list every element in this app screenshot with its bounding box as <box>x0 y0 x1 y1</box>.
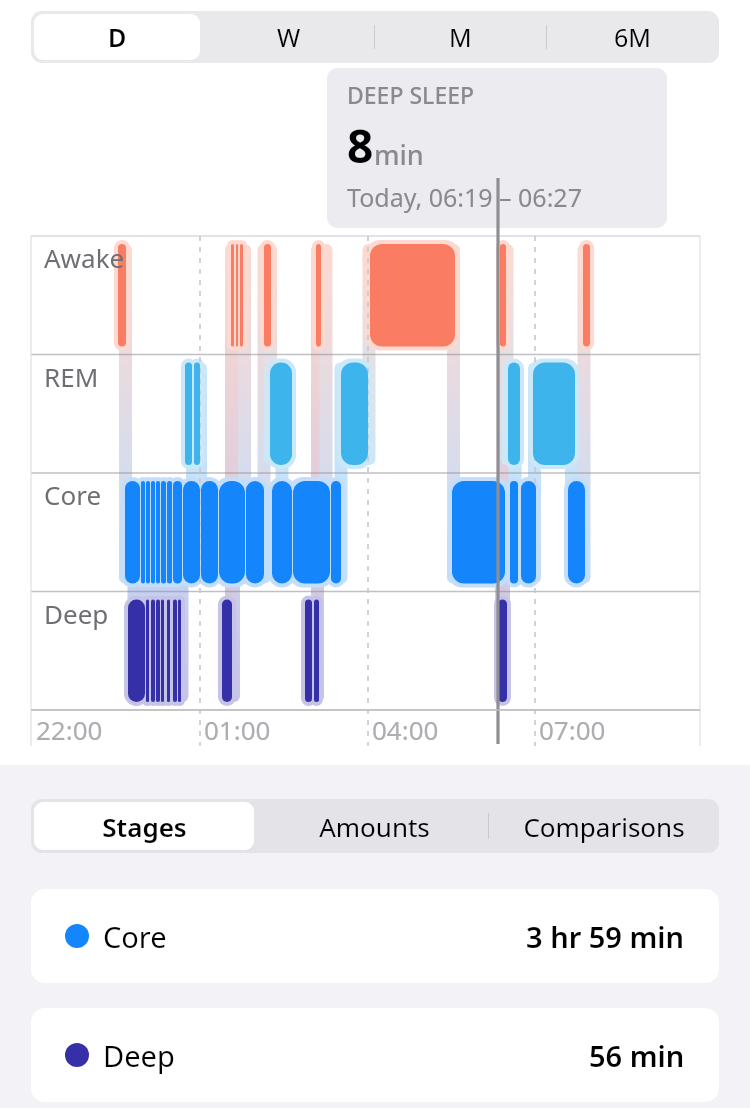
staticText: Awake <box>44 240 125 275</box>
staticText: DEEP SLEEP <box>347 79 475 110</box>
button[interactable]: Core <box>31 889 719 983</box>
button[interactable]: Deep <box>31 1008 719 1102</box>
button[interactable]: D <box>34 14 200 60</box>
button[interactable]: Comparisons <box>490 802 718 850</box>
staticText: Core <box>103 917 167 956</box>
staticText: 07:00 <box>539 712 606 747</box>
staticText: Stages <box>102 809 187 844</box>
staticText: Deep <box>44 596 109 631</box>
button[interactable]: W <box>206 14 372 60</box>
button[interactable]: Stages <box>34 802 254 850</box>
staticText: 04:00 <box>372 712 439 747</box>
staticText: min <box>374 136 424 173</box>
button[interactable]: M <box>377 14 543 60</box>
button[interactable]: DEEP SLEEP <box>327 68 667 228</box>
staticText: W <box>277 20 301 54</box>
staticText: 56 min <box>589 1036 685 1075</box>
staticText: 01:00 <box>204 712 271 747</box>
staticText: 6M <box>614 20 651 54</box>
staticText: D <box>108 20 127 54</box>
staticText: Deep <box>103 1036 175 1075</box>
staticText: Amounts <box>319 809 430 844</box>
staticText: 22:00 <box>36 712 103 747</box>
staticText: 8 <box>347 114 374 177</box>
staticText: Today, 06:19 – 06:27 <box>347 180 582 214</box>
staticText: Core <box>44 477 102 512</box>
staticText: REM <box>44 359 99 394</box>
button[interactable]: Amounts <box>262 802 486 850</box>
staticText: 3 hr 59 min <box>526 917 685 956</box>
staticText: M <box>449 20 472 54</box>
button[interactable]: 6M <box>549 14 715 60</box>
staticText: Comparisons <box>523 809 685 844</box>
